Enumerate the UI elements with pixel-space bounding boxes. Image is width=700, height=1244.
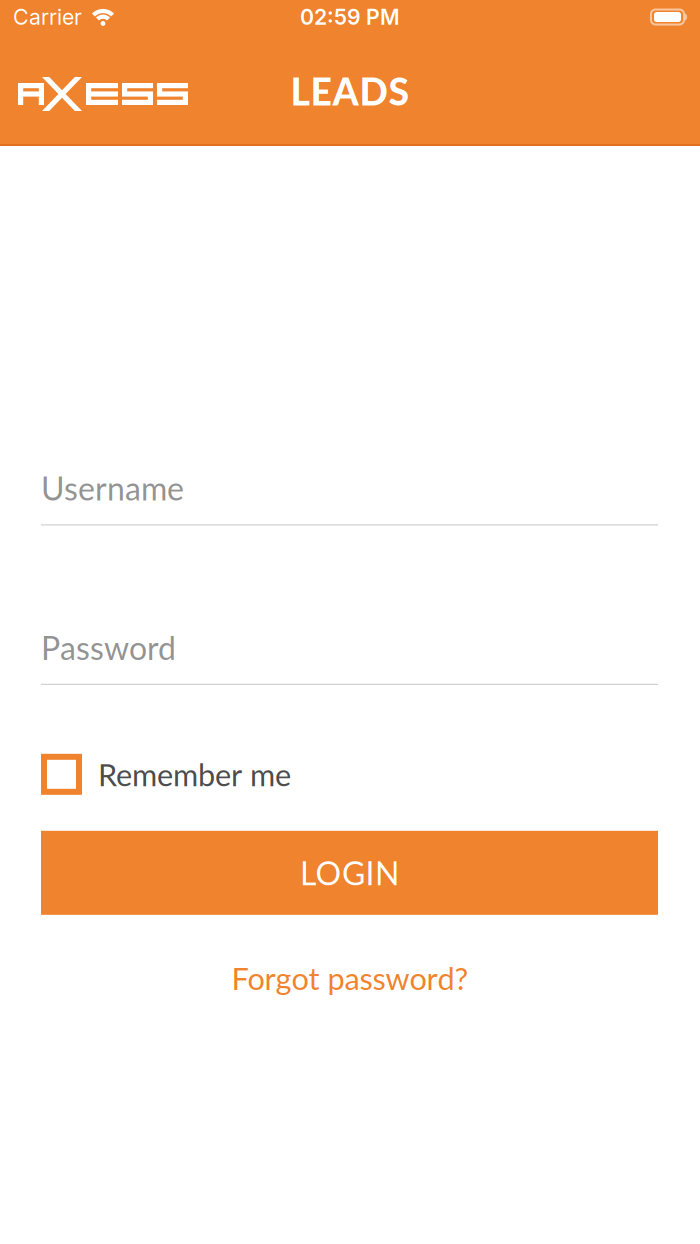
staticText: Password	[41, 628, 176, 667]
button[interactable]: Username	[41, 469, 658, 525]
button[interactable]: Forgot password?	[231, 960, 468, 997]
button[interactable]: LOGIN	[41, 831, 658, 915]
staticText: Username	[41, 469, 184, 507]
staticText: Forgot password?	[231, 960, 468, 997]
staticText: LOGIN	[300, 854, 399, 892]
staticText: LEADS	[290, 69, 409, 113]
staticText: 02:59 PM	[300, 4, 400, 30]
staticText: Remember me	[98, 756, 291, 793]
button[interactable]: Remember me	[41, 754, 291, 795]
button[interactable]: Password	[41, 628, 658, 685]
staticText: Carrier	[13, 4, 82, 30]
